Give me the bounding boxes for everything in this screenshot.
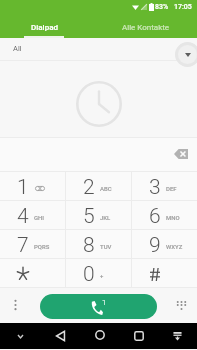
- staticText: 3: [149, 175, 161, 200]
- button[interactable]: Downloads: [158, 323, 197, 349]
- staticText: TUV: [100, 243, 112, 250]
- button[interactable]: Recent apps: [119, 323, 158, 349]
- button[interactable]: Keypad: [172, 296, 190, 314]
- button[interactable]: Call: [40, 294, 157, 319]
- staticText: Alle Kontakte: [122, 23, 170, 32]
- staticText: JKL: [100, 214, 111, 221]
- staticText: +: [100, 272, 104, 279]
- staticText: 2: [83, 175, 95, 200]
- button[interactable]: 5: [66, 201, 131, 229]
- staticText: 6: [149, 204, 161, 229]
- staticText: 8: [83, 233, 95, 258]
- staticText: ABC: [100, 185, 112, 192]
- staticText: 17:05: [174, 3, 192, 11]
- button[interactable]: Expand: [175, 42, 197, 67]
- staticText: 7: [17, 233, 29, 258]
- button[interactable]: 9: [132, 230, 197, 258]
- button[interactable]: 6: [132, 201, 197, 229]
- button[interactable]: Hide keyboard: [0, 323, 40, 349]
- staticText: GHI: [34, 214, 45, 221]
- button[interactable]: [0, 259, 65, 287]
- staticText: Dialpad: [31, 23, 59, 32]
- staticText: MNO: [166, 214, 180, 221]
- button[interactable]: 3: [132, 172, 197, 200]
- button[interactable]: Dialpad: [0, 13, 98, 38]
- button[interactable]: 2: [66, 172, 131, 200]
- staticText: 4: [17, 204, 29, 229]
- staticText: 83%: [155, 3, 169, 11]
- staticText: 5: [83, 204, 95, 229]
- staticText: 1: [102, 298, 107, 307]
- button[interactable]: 4: [0, 201, 65, 229]
- staticText: 0: [83, 262, 95, 287]
- button[interactable]: [132, 259, 197, 287]
- button[interactable]: 0: [66, 259, 131, 287]
- staticText: All: [13, 44, 22, 53]
- button[interactable]: Home: [80, 323, 119, 349]
- staticText: PQRS: [34, 243, 50, 250]
- button[interactable]: Backspace: [170, 145, 192, 163]
- button[interactable]: 7: [0, 230, 65, 258]
- button[interactable]: 8: [66, 230, 131, 258]
- button[interactable]: More options: [6, 296, 24, 314]
- staticText: 1: [17, 175, 29, 200]
- button[interactable]: Back: [40, 323, 80, 349]
- staticText: WXYZ: [166, 243, 183, 250]
- button[interactable]: 1: [0, 172, 65, 200]
- staticText: DEF: [166, 185, 177, 192]
- staticText: 9: [149, 233, 161, 258]
- button[interactable]: Alle Kontakte: [98, 13, 197, 38]
